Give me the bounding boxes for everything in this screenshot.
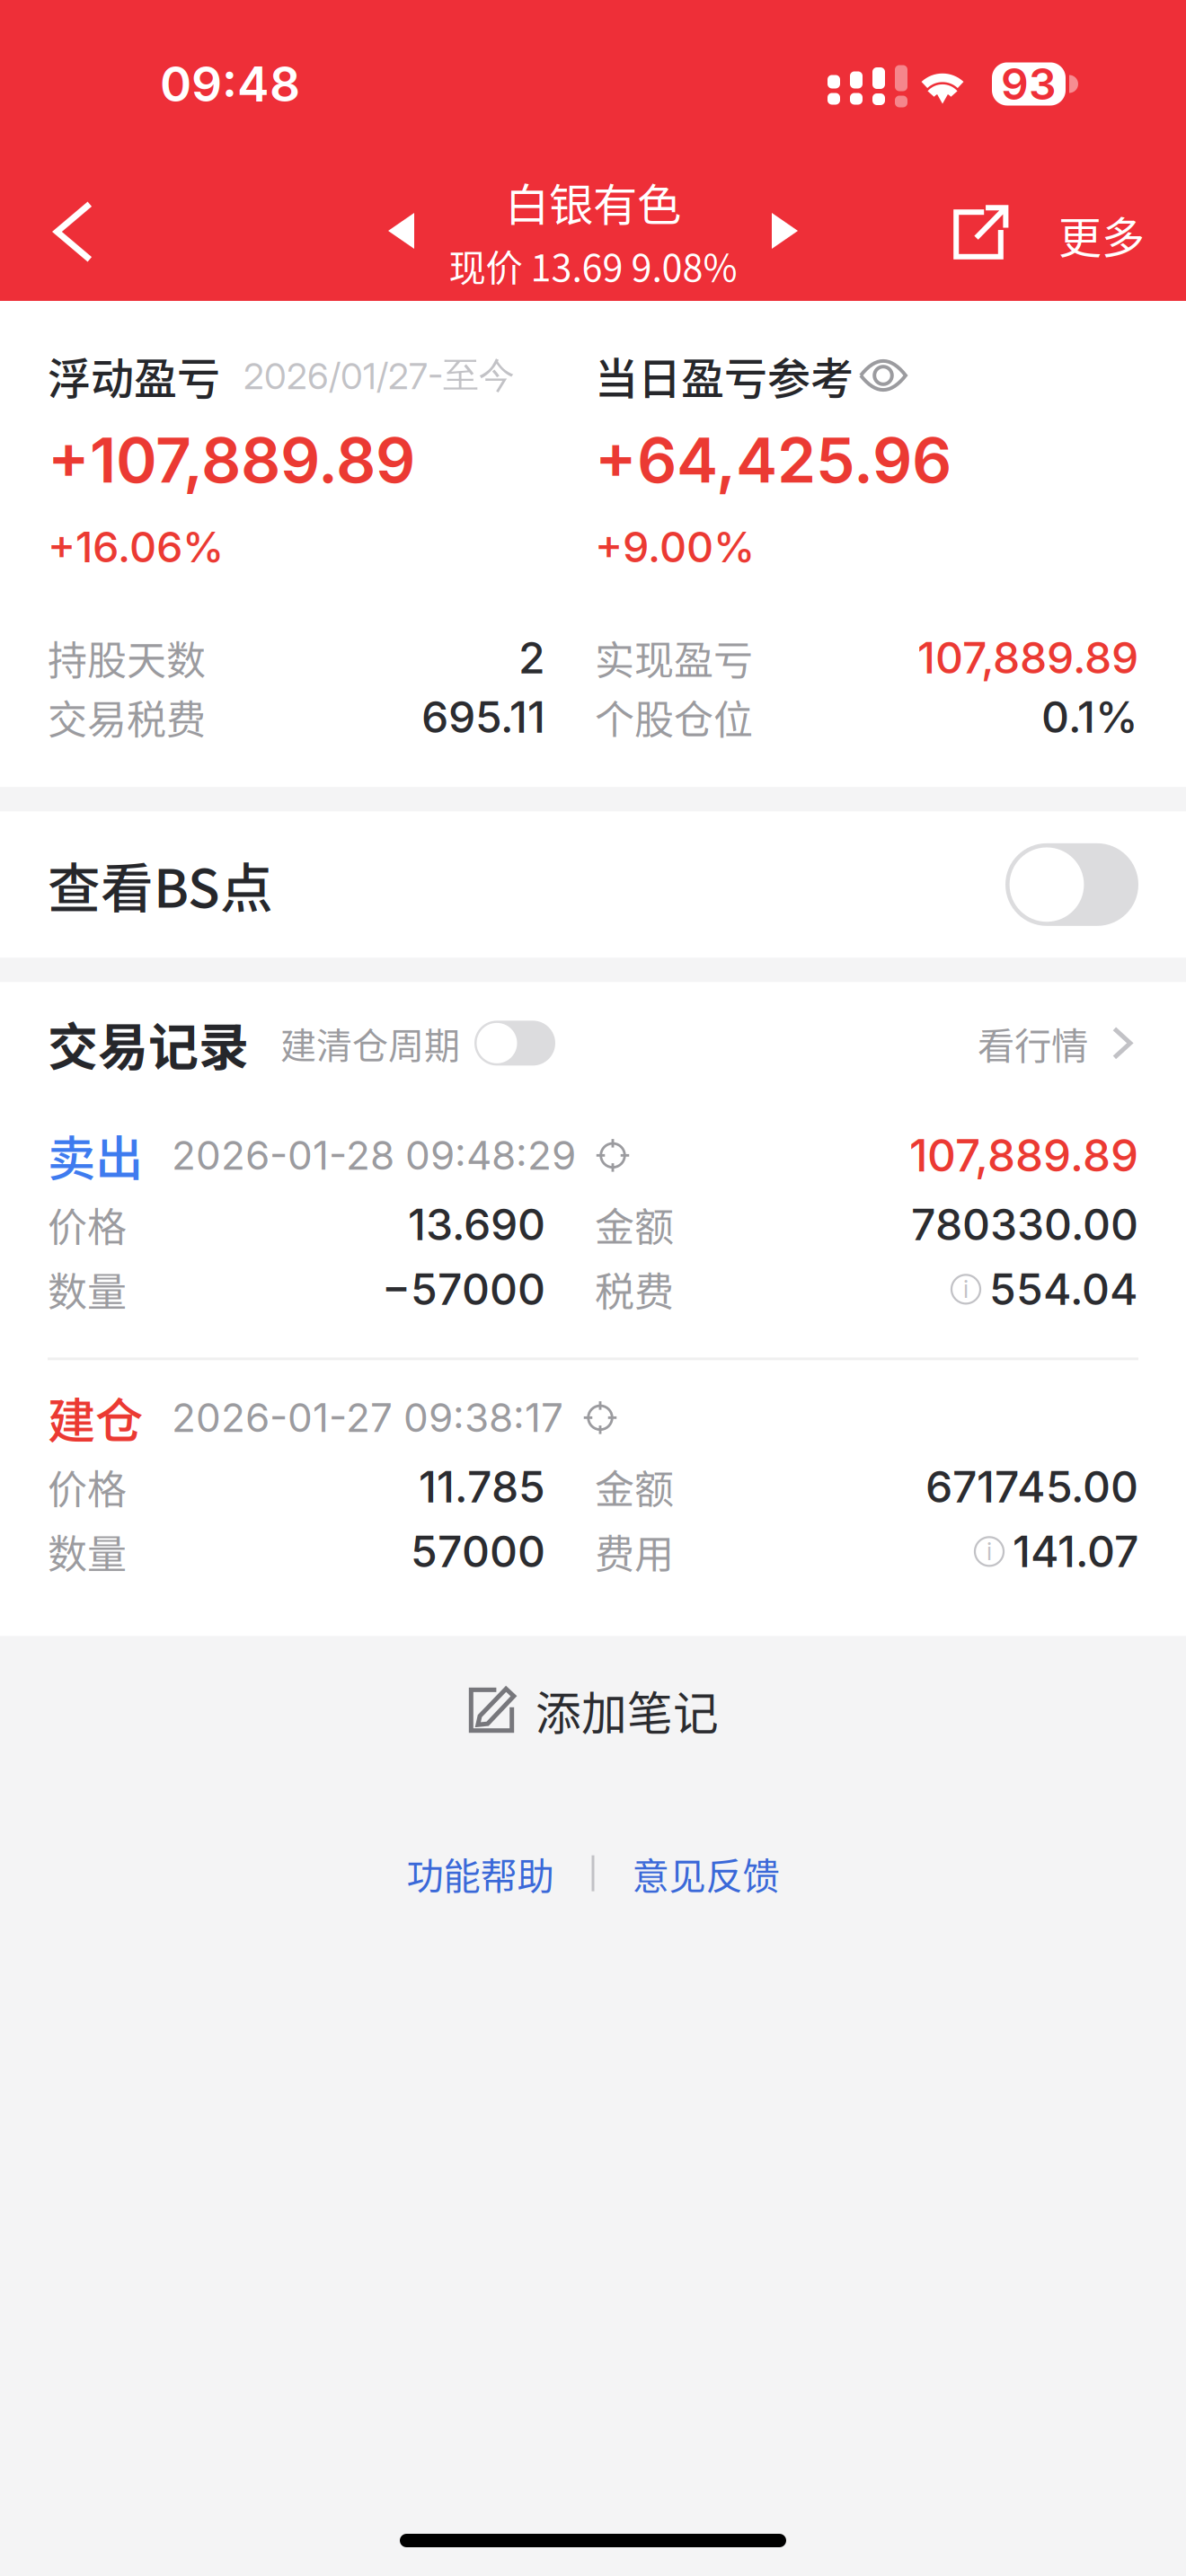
- staticText: 金额: [595, 1196, 674, 1253]
- staticText: 554.04: [989, 1263, 1138, 1315]
- staticText: 功能帮助: [407, 1846, 554, 1900]
- staticText: 107,889.89: [909, 1129, 1138, 1182]
- staticText: +107,889.89: [48, 422, 415, 498]
- staticText: 107,889.89: [917, 632, 1138, 684]
- staticText: 0.1%: [1041, 691, 1138, 743]
- staticText: 白银有色: [505, 170, 681, 234]
- staticText: 费用: [595, 1523, 674, 1580]
- staticText: 13.690: [408, 1198, 545, 1251]
- staticText: 意见反馈: [632, 1846, 779, 1900]
- staticText: 2026/01/27-至今: [243, 353, 515, 398]
- staticText: 更多: [1058, 203, 1145, 266]
- staticText: 价格: [48, 1196, 127, 1253]
- staticText: 添加笔记: [535, 1677, 719, 1743]
- button[interactable]: 添加笔记: [446, 1666, 740, 1754]
- staticText: 实现盈亏: [595, 629, 753, 686]
- staticText: 57000: [411, 1525, 545, 1578]
- staticText: +9.00%: [595, 522, 755, 573]
- staticText: 交易记录: [48, 1007, 249, 1080]
- button[interactable]: 功能帮助: [389, 1837, 572, 1909]
- staticText: +64,425.96: [595, 422, 951, 498]
- staticText: 持股天数: [48, 629, 206, 686]
- staticText: 141.07: [1013, 1525, 1138, 1578]
- staticText: 2026-01-28 09:48:29: [172, 1131, 576, 1179]
- staticText: 当日盈亏参考: [595, 344, 854, 407]
- staticText: 价格: [48, 1458, 127, 1515]
- button[interactable]: 下一只: [751, 186, 819, 276]
- staticText: 金额: [595, 1458, 674, 1515]
- staticText: 2026-01-27 09:38:17: [172, 1394, 563, 1442]
- staticText: 看行情: [978, 1016, 1088, 1070]
- button[interactable]: 建清仓周期: [474, 1021, 555, 1066]
- staticText: 现价 13.69 9.08%: [449, 238, 737, 292]
- staticText: i: [987, 1537, 992, 1566]
- staticText: −57000: [382, 1263, 545, 1315]
- staticText: 数量: [48, 1523, 127, 1580]
- staticText: 2: [518, 632, 545, 684]
- staticText: 93: [1001, 58, 1057, 110]
- staticText: 卖出: [48, 1121, 143, 1190]
- staticText: 695.11: [421, 691, 545, 743]
- staticText: 个股仓位: [595, 688, 753, 746]
- staticText: 780330.00: [911, 1198, 1138, 1251]
- staticText: 税费: [595, 1261, 674, 1318]
- staticText: 交易税费: [48, 688, 206, 746]
- staticText: 数量: [48, 1261, 127, 1318]
- button[interactable]: 意见反馈: [614, 1837, 797, 1909]
- staticText: 浮动盈亏: [48, 344, 220, 407]
- staticText: +16.06%: [48, 522, 224, 573]
- staticText: 671745.00: [925, 1461, 1138, 1513]
- staticText: 11.785: [419, 1461, 545, 1513]
- staticText: 09:48: [160, 55, 300, 113]
- staticText: 查看BS点: [48, 846, 273, 923]
- button[interactable]: 上一只: [367, 186, 435, 276]
- button[interactable]: 返回: [21, 178, 128, 286]
- button[interactable]: 更多: [951, 187, 1186, 282]
- button[interactable]: 查看BS点: [0, 811, 1186, 958]
- staticText: 建清仓周期: [280, 1017, 460, 1069]
- button[interactable]: 看行情: [978, 1016, 1138, 1070]
- staticText: 建仓: [48, 1383, 143, 1452]
- staticText: i: [963, 1275, 969, 1304]
